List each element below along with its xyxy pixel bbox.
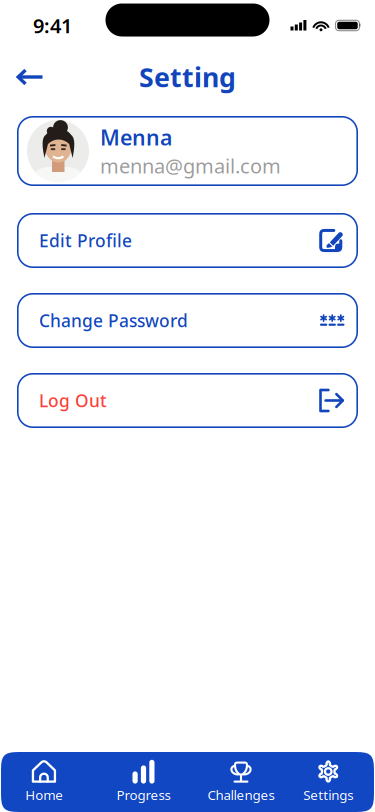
button[interactable]: Log Out (17, 373, 358, 428)
button[interactable]: Menna (17, 116, 358, 186)
staticText: Edit Profile (39, 229, 132, 252)
staticText: Challenges (207, 786, 274, 804)
button[interactable]: Settings (282, 752, 374, 812)
button[interactable]: Home (1, 752, 87, 812)
button[interactable]: Edit Profile (17, 213, 358, 268)
staticText: menna@gmail.com (100, 152, 281, 179)
staticText: 9:41 (33, 12, 72, 39)
staticText: Menna (100, 123, 172, 151)
button[interactable]: Back (0, 58, 52, 95)
staticText: Change Password (39, 309, 188, 332)
staticText: Settings (303, 786, 353, 804)
button[interactable]: Challenges (199, 752, 282, 812)
staticText: Log Out (39, 389, 107, 412)
button[interactable]: Progress (87, 752, 199, 812)
staticText: Progress (116, 786, 170, 804)
staticText: Setting (139, 59, 236, 95)
button[interactable]: Change Password (17, 293, 358, 348)
staticText: Home (25, 786, 63, 804)
